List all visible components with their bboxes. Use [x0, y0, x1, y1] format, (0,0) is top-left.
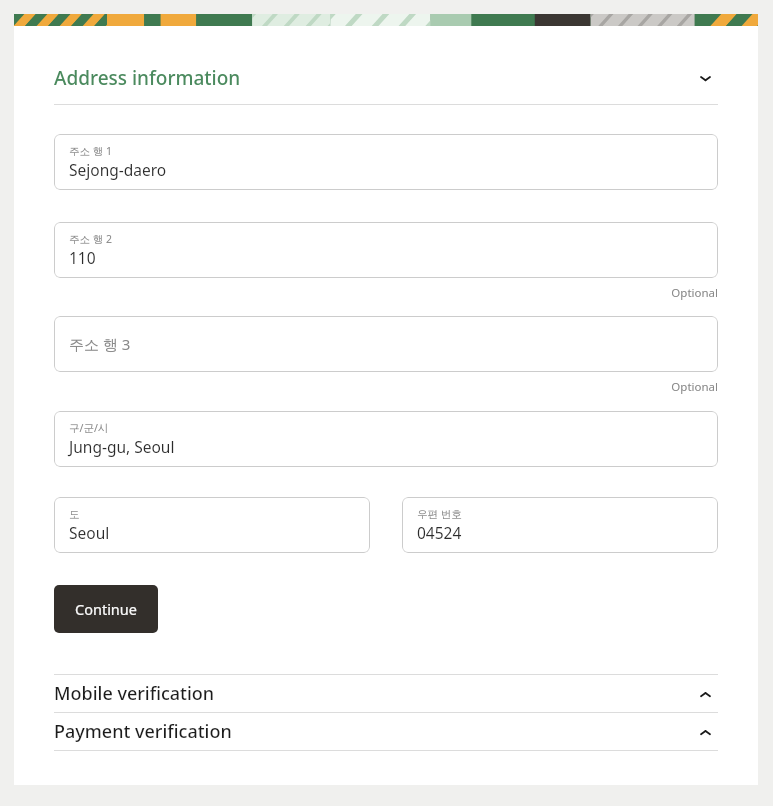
- staticText: 주소 행 2: [69, 232, 112, 246]
- button[interactable]: 구/군/시: [54, 411, 718, 467]
- button[interactable]: 도: [54, 497, 370, 553]
- staticText: 주소 행 3: [69, 334, 131, 354]
- staticText: 우편 번호: [417, 507, 462, 521]
- button[interactable]: Payment verification: [54, 713, 718, 750]
- staticText: 110: [69, 247, 96, 268]
- button[interactable]: 주소 행 1: [54, 134, 718, 190]
- staticText: Sejong-daero: [69, 159, 167, 180]
- other: Collapse Address information: [692, 65, 718, 91]
- button[interactable]: Continue: [54, 585, 158, 633]
- other: Collapse Payment verification: [692, 719, 718, 745]
- other: Collapse Mobile verification: [692, 681, 718, 707]
- button[interactable]: 우편 번호: [402, 497, 718, 553]
- button[interactable]: 주소 행 3: [54, 316, 718, 372]
- staticText: Continue: [75, 599, 137, 619]
- staticText: Seoul: [69, 522, 110, 543]
- staticText: Payment verification: [54, 719, 692, 744]
- staticText: 도: [69, 508, 80, 521]
- staticText: 주소 행 1: [69, 144, 112, 158]
- staticText: 구/군/시: [69, 421, 109, 435]
- button[interactable]: 주소 행 2: [54, 222, 718, 278]
- staticText: Jung-gu, Seoul: [69, 436, 175, 457]
- staticText: Mobile verification: [54, 681, 692, 706]
- staticText: Optional: [671, 285, 718, 301]
- button[interactable]: Address information: [54, 65, 718, 91]
- staticText: Address information: [54, 65, 692, 91]
- button[interactable]: Mobile verification: [54, 675, 718, 712]
- staticText: Optional: [671, 379, 718, 395]
- staticText: 04524: [417, 522, 462, 543]
